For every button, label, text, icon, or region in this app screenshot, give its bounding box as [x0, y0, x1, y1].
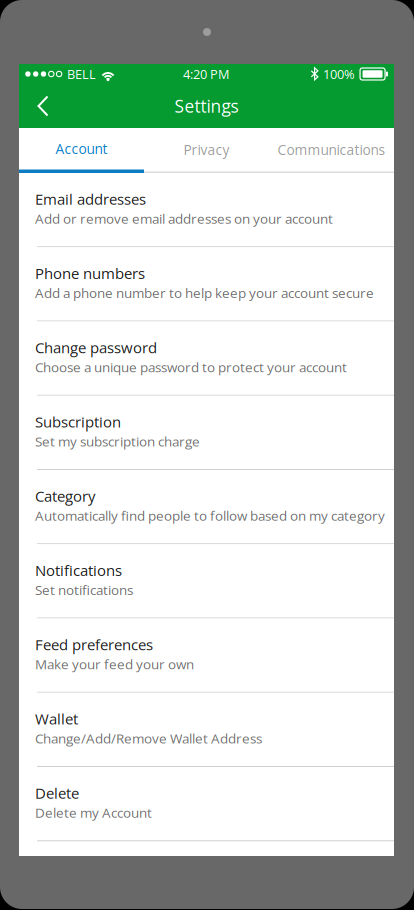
staticText: Change/Add/Remove Wallet Address	[35, 729, 262, 747]
staticText: Communications	[277, 140, 385, 159]
button[interactable]: Communications	[269, 128, 394, 173]
staticText: 100%	[323, 65, 355, 83]
staticText: Add a phone number to help keep your acc…	[35, 284, 374, 302]
staticText: Feed preferences	[35, 634, 153, 655]
button[interactable]: Delete	[19, 767, 394, 841]
button[interactable]: Phone numbers	[19, 247, 394, 321]
staticText: Settings	[174, 94, 238, 118]
button[interactable]: Account	[19, 128, 144, 173]
staticText: Automatically find people to follow base…	[35, 506, 385, 525]
staticText: Delete my Account	[35, 803, 152, 822]
staticText: Delete	[35, 783, 79, 803]
button[interactable]: Change password	[19, 321, 394, 396]
staticText: BELL	[67, 65, 96, 83]
button[interactable]: Feed preferences	[19, 618, 394, 693]
staticText: Make your feed your own	[35, 655, 194, 673]
staticText: Email addresses	[35, 189, 146, 209]
staticText: Choose a unique password to protect your…	[35, 358, 347, 376]
button[interactable]: Back	[19, 84, 65, 128]
button[interactable]: Notifications	[19, 544, 394, 618]
staticText: Privacy	[183, 140, 229, 159]
staticText: Add or remove email addresses on your ac…	[35, 209, 333, 228]
staticText: Change password	[35, 337, 157, 358]
button[interactable]: Privacy	[144, 128, 269, 173]
button[interactable]: Wallet	[19, 693, 394, 767]
staticText: Phone numbers	[35, 263, 145, 283]
staticText: Set notifications	[35, 581, 133, 599]
staticText: Wallet	[35, 709, 78, 729]
staticText: Notifications	[35, 560, 122, 580]
button[interactable]: Subscription	[19, 396, 394, 470]
staticText: Set my subscription charge	[35, 432, 200, 450]
button[interactable]: Category	[19, 470, 394, 544]
staticText: Category	[35, 486, 95, 506]
staticText: Account	[55, 139, 107, 158]
staticText: Subscription	[35, 412, 121, 432]
button[interactable]: Email addresses	[19, 173, 394, 247]
staticText: 4:20 PM	[183, 65, 230, 83]
